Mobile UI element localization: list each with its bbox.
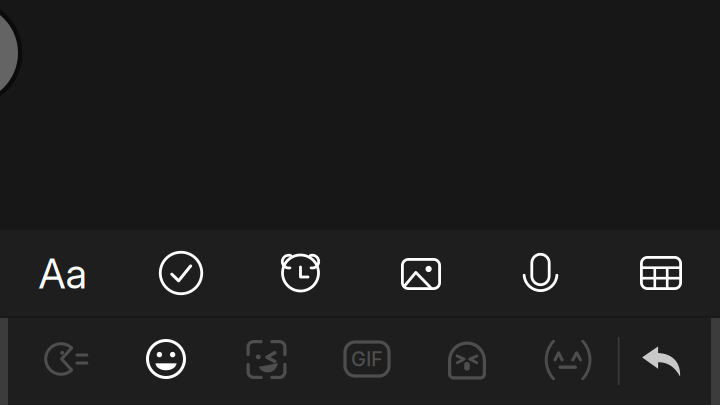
button[interactable]: More apps bbox=[633, 245, 689, 301]
button[interactable]: GIF bbox=[339, 331, 395, 387]
button[interactable]: Audio message bbox=[512, 245, 568, 301]
button[interactable]: Photos bbox=[393, 246, 449, 302]
button[interactable]: Live stickers bbox=[238, 331, 294, 387]
staticText: Aa bbox=[38, 248, 86, 298]
button[interactable]: Kaomoji bbox=[540, 332, 596, 388]
button[interactable]: Memoji bbox=[38, 331, 94, 387]
staticText: GIF bbox=[351, 347, 383, 371]
button[interactable]: Send Later bbox=[272, 244, 328, 300]
button[interactable]: Memoji stickers bbox=[439, 332, 495, 388]
button[interactable]: Delete bbox=[633, 333, 689, 389]
button[interactable]: Emoji bbox=[138, 331, 194, 387]
button[interactable]: Text formatting bbox=[17, 244, 107, 302]
button[interactable]: Check In bbox=[153, 245, 209, 301]
